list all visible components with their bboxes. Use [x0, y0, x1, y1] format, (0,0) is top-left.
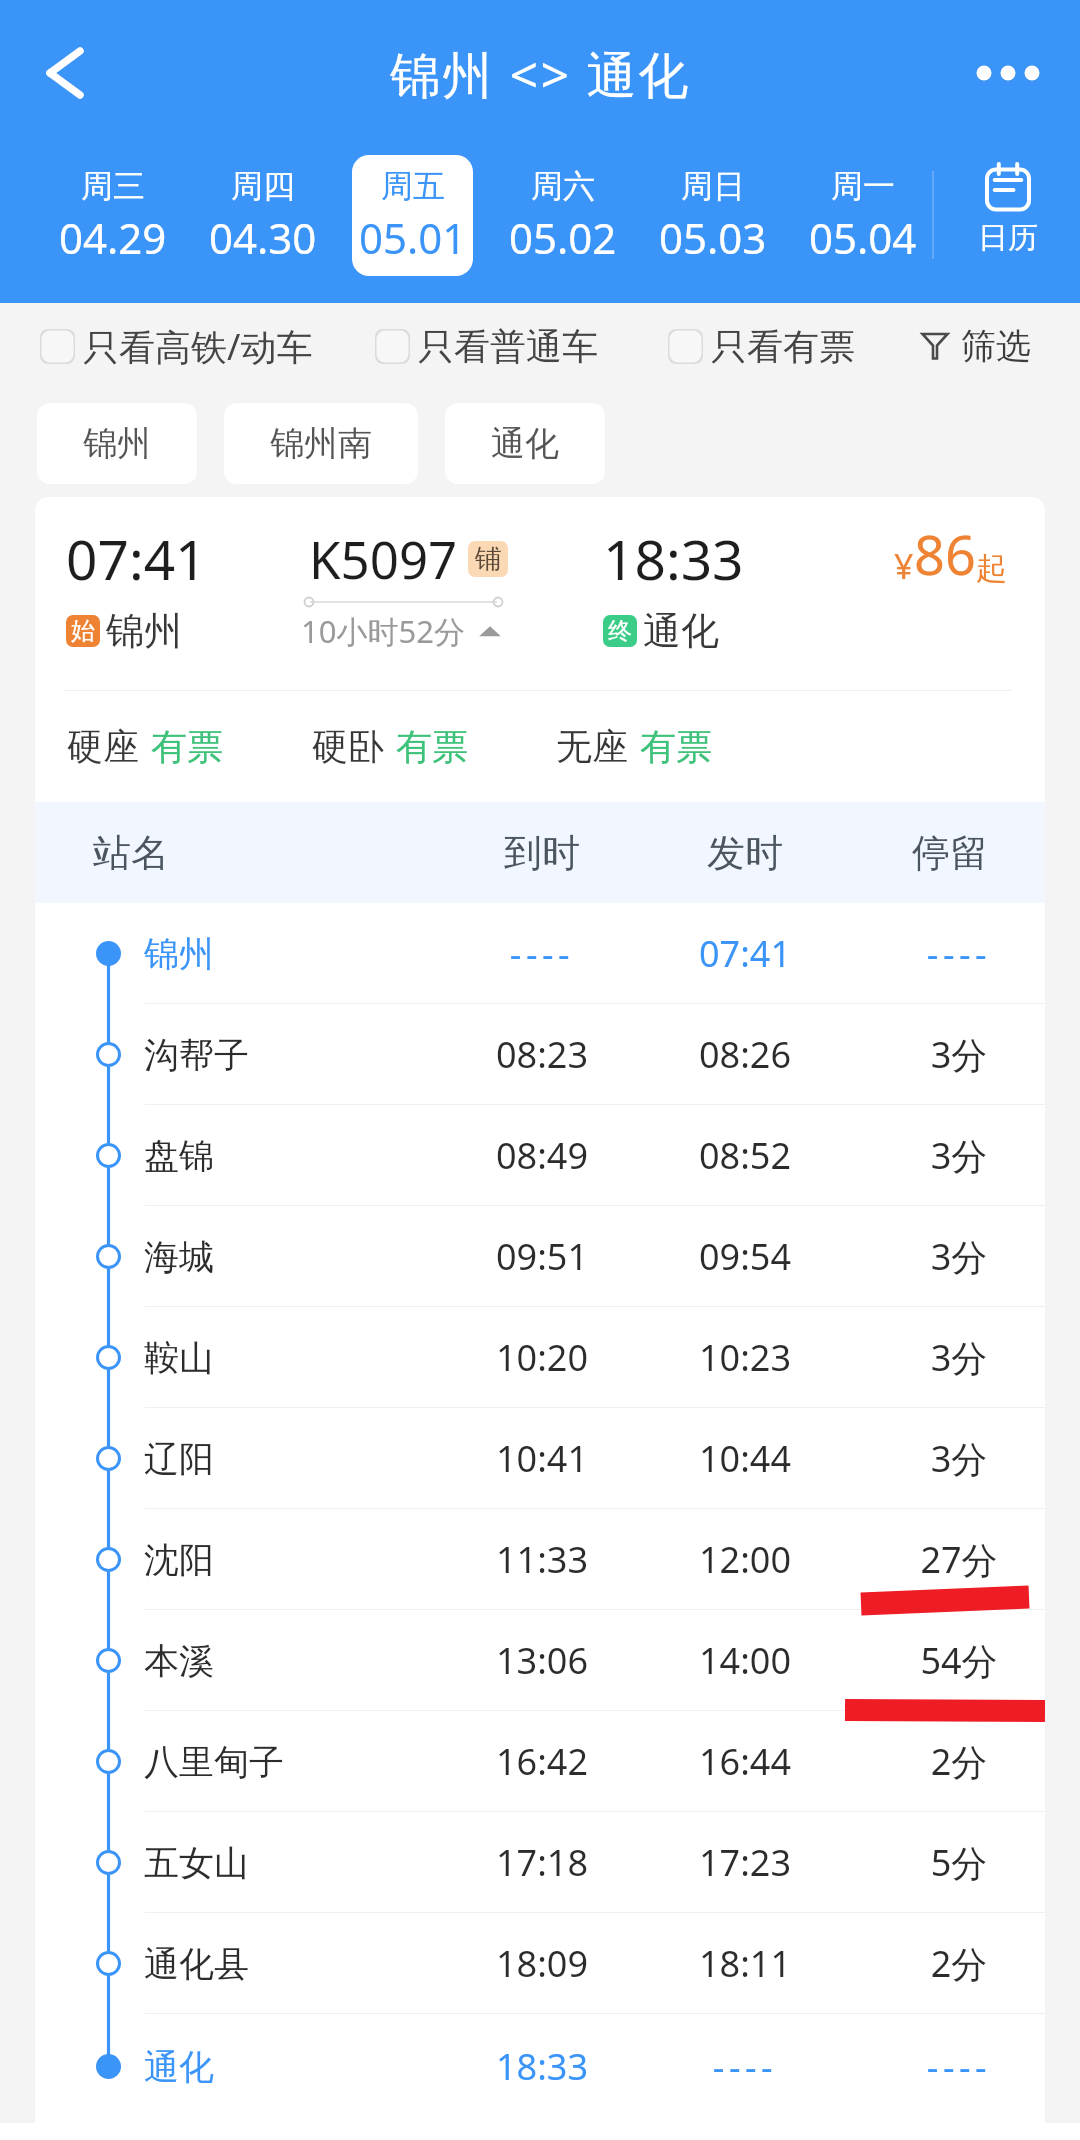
button[interactable]: 周三: [52, 155, 173, 276]
staticText: 八里甸子: [144, 1740, 284, 1784]
staticText: 有票: [640, 724, 712, 769]
staticText: 海城: [144, 1235, 214, 1279]
staticText: 硬座: [67, 724, 139, 769]
staticText: 有票: [396, 724, 468, 769]
staticText: 05.04: [809, 209, 917, 266]
staticText: 终: [608, 616, 632, 646]
staticText: 沟帮子: [144, 1033, 249, 1077]
staticText: 18:09: [442, 1939, 642, 1988]
staticText: 盘锦: [144, 1134, 214, 1178]
staticText: 周日: [681, 166, 745, 206]
staticText: 18:33: [603, 521, 744, 596]
staticText: 10小时52分: [301, 610, 465, 652]
staticText: 五女山: [144, 1841, 249, 1885]
staticText: 鞍山: [144, 1336, 214, 1380]
button[interactable]: 周一: [802, 155, 923, 276]
staticText: 10:20: [442, 1333, 642, 1382]
staticText: 04.29: [59, 209, 167, 266]
staticText: 12:00: [645, 1535, 845, 1584]
staticText: 08:23: [442, 1030, 642, 1079]
staticText: 16:42: [442, 1737, 642, 1786]
staticText: 08:52: [645, 1131, 845, 1180]
button[interactable]: 八里甸子: [35, 1711, 1045, 1812]
staticText: 10:23: [645, 1333, 845, 1382]
button[interactable]: 盘锦: [35, 1105, 1045, 1206]
staticText: ¥: [894, 543, 914, 589]
staticText: 13:06: [442, 1636, 642, 1685]
staticText: 锦州 <> 通化: [390, 40, 691, 108]
staticText: 05.03: [659, 209, 767, 266]
staticText: 05.01: [359, 209, 467, 266]
staticText: 日历: [978, 219, 1038, 257]
button[interactable]: 通化: [35, 2014, 1045, 2119]
button[interactable]: 沟帮子: [35, 1004, 1045, 1105]
staticText: 09:54: [645, 1232, 845, 1281]
staticText: 周三: [81, 166, 145, 206]
staticText: 07:41: [645, 929, 845, 978]
staticText: 3分: [859, 1030, 1045, 1079]
staticText: 硬卧: [312, 724, 384, 769]
staticText: 18:11: [645, 1939, 845, 1988]
staticText: 16:44: [645, 1737, 845, 1786]
staticText: 27分: [859, 1535, 1045, 1584]
staticText: 11:33: [442, 1535, 642, 1584]
button[interactable]: 五女山: [35, 1812, 1045, 1913]
staticText: 周六: [531, 166, 595, 206]
button[interactable]: 07:41: [35, 497, 1045, 690]
staticText: 锦州: [83, 422, 151, 465]
staticText: 54分: [859, 1636, 1045, 1685]
staticText: 周一: [831, 166, 895, 206]
button[interactable]: 海城: [35, 1206, 1045, 1307]
staticText: 锦州南: [270, 422, 372, 465]
button[interactable]: 通化县: [35, 1913, 1045, 2014]
staticText: 3分: [859, 1434, 1045, 1483]
button[interactable]: 周四: [202, 155, 323, 276]
button[interactable]: 筛选: [921, 312, 1031, 380]
staticText: 17:23: [645, 1838, 845, 1887]
button[interactable]: 本溪: [35, 1610, 1045, 1711]
staticText: 3分: [859, 1131, 1045, 1180]
staticText: 通化: [643, 607, 719, 655]
button[interactable]: 鞍山: [35, 1307, 1045, 1408]
button[interactable]: Calendar: [935, 150, 1080, 270]
staticText: 2分: [859, 1939, 1045, 1988]
staticText: 通化: [491, 422, 559, 465]
button[interactable]: 锦州南: [224, 403, 418, 484]
staticText: 5分: [859, 1838, 1045, 1887]
staticText: 无座: [556, 724, 628, 769]
staticText: 3分: [859, 1333, 1045, 1382]
staticText: 08:49: [442, 1131, 642, 1180]
staticText: 筛选: [961, 324, 1031, 368]
staticText: 只看高铁/动车: [83, 322, 313, 371]
staticText: 本溪: [144, 1639, 214, 1683]
staticText: 08:26: [645, 1030, 845, 1079]
button[interactable]: Back: [25, 33, 105, 113]
staticText: 停留: [850, 829, 1045, 877]
button[interactable]: 锦州: [37, 403, 197, 484]
staticText: 09:51: [442, 1232, 642, 1281]
staticText: 07:41: [66, 521, 207, 596]
button[interactable]: 通化: [445, 403, 605, 484]
button[interactable]: 辽阳: [35, 1408, 1045, 1509]
button[interactable]: 锦州: [35, 903, 1045, 1004]
staticText: 2分: [859, 1737, 1045, 1786]
button[interactable]: 只看有票: [668, 312, 855, 380]
button[interactable]: 周日: [652, 155, 773, 276]
staticText: ----: [645, 2042, 845, 2091]
staticText: 铺: [475, 542, 502, 576]
staticText: 到时: [442, 829, 642, 877]
button[interactable]: 周五: [352, 155, 473, 276]
staticText: 只看有票: [711, 324, 855, 369]
staticText: 86: [914, 517, 976, 591]
button[interactable]: 沈阳: [35, 1509, 1045, 1610]
button[interactable]: 只看高铁/动车: [40, 312, 313, 380]
staticText: 始: [71, 616, 95, 646]
button[interactable]: 周六: [502, 155, 623, 276]
staticText: 04.30: [209, 209, 317, 266]
staticText: 起: [976, 549, 1007, 588]
staticText: K5097: [309, 524, 458, 593]
staticText: 沈阳: [144, 1538, 214, 1582]
staticText: 通化: [144, 2045, 214, 2089]
button[interactable]: 只看普通车: [375, 312, 598, 380]
button[interactable]: More options: [964, 29, 1052, 117]
